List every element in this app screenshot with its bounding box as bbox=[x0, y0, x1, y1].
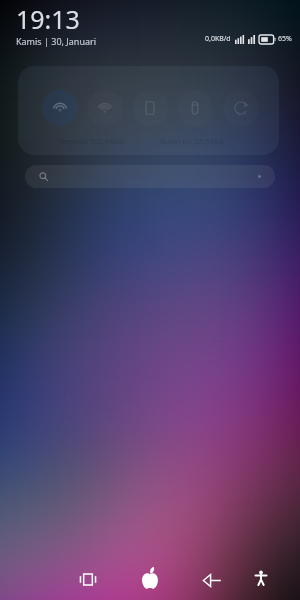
button[interactable]: Search bbox=[25, 165, 275, 188]
other: Device bbox=[142, 100, 158, 116]
button[interactable]: Back bbox=[190, 558, 234, 600]
other: Wi-Fi bbox=[97, 100, 113, 116]
staticText: 65% bbox=[278, 34, 292, 44]
button[interactable]: Recents bbox=[66, 557, 110, 600]
button[interactable]: Accessibility bbox=[239, 556, 283, 600]
other: Mobile data bbox=[52, 100, 68, 116]
staticText: Bulan ini: 25,64GB bbox=[160, 136, 225, 146]
staticText: 19:13 bbox=[16, 2, 80, 36]
button[interactable]: Home bbox=[128, 556, 172, 600]
staticText: Kamis | 30, Januari bbox=[16, 35, 97, 47]
button[interactable]: Wi-Fi bbox=[87, 90, 123, 126]
other: Flashlight bbox=[187, 100, 203, 116]
button[interactable]: Flashlight bbox=[177, 90, 213, 126]
button[interactable]: Mobile data bbox=[42, 90, 78, 126]
button[interactable]: Device bbox=[132, 90, 168, 126]
staticText: Terpakai 502,64GB bbox=[58, 136, 124, 146]
other: Sync bbox=[233, 100, 249, 116]
staticText: 0,0KB/d bbox=[205, 34, 231, 44]
button[interactable]: Sync bbox=[223, 90, 259, 126]
